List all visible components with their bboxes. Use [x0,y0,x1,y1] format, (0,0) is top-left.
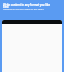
staticText: Powered by the best editor in the world [3,8,44,11]
staticText: Write content in any format you like bes… [3,3,51,8]
